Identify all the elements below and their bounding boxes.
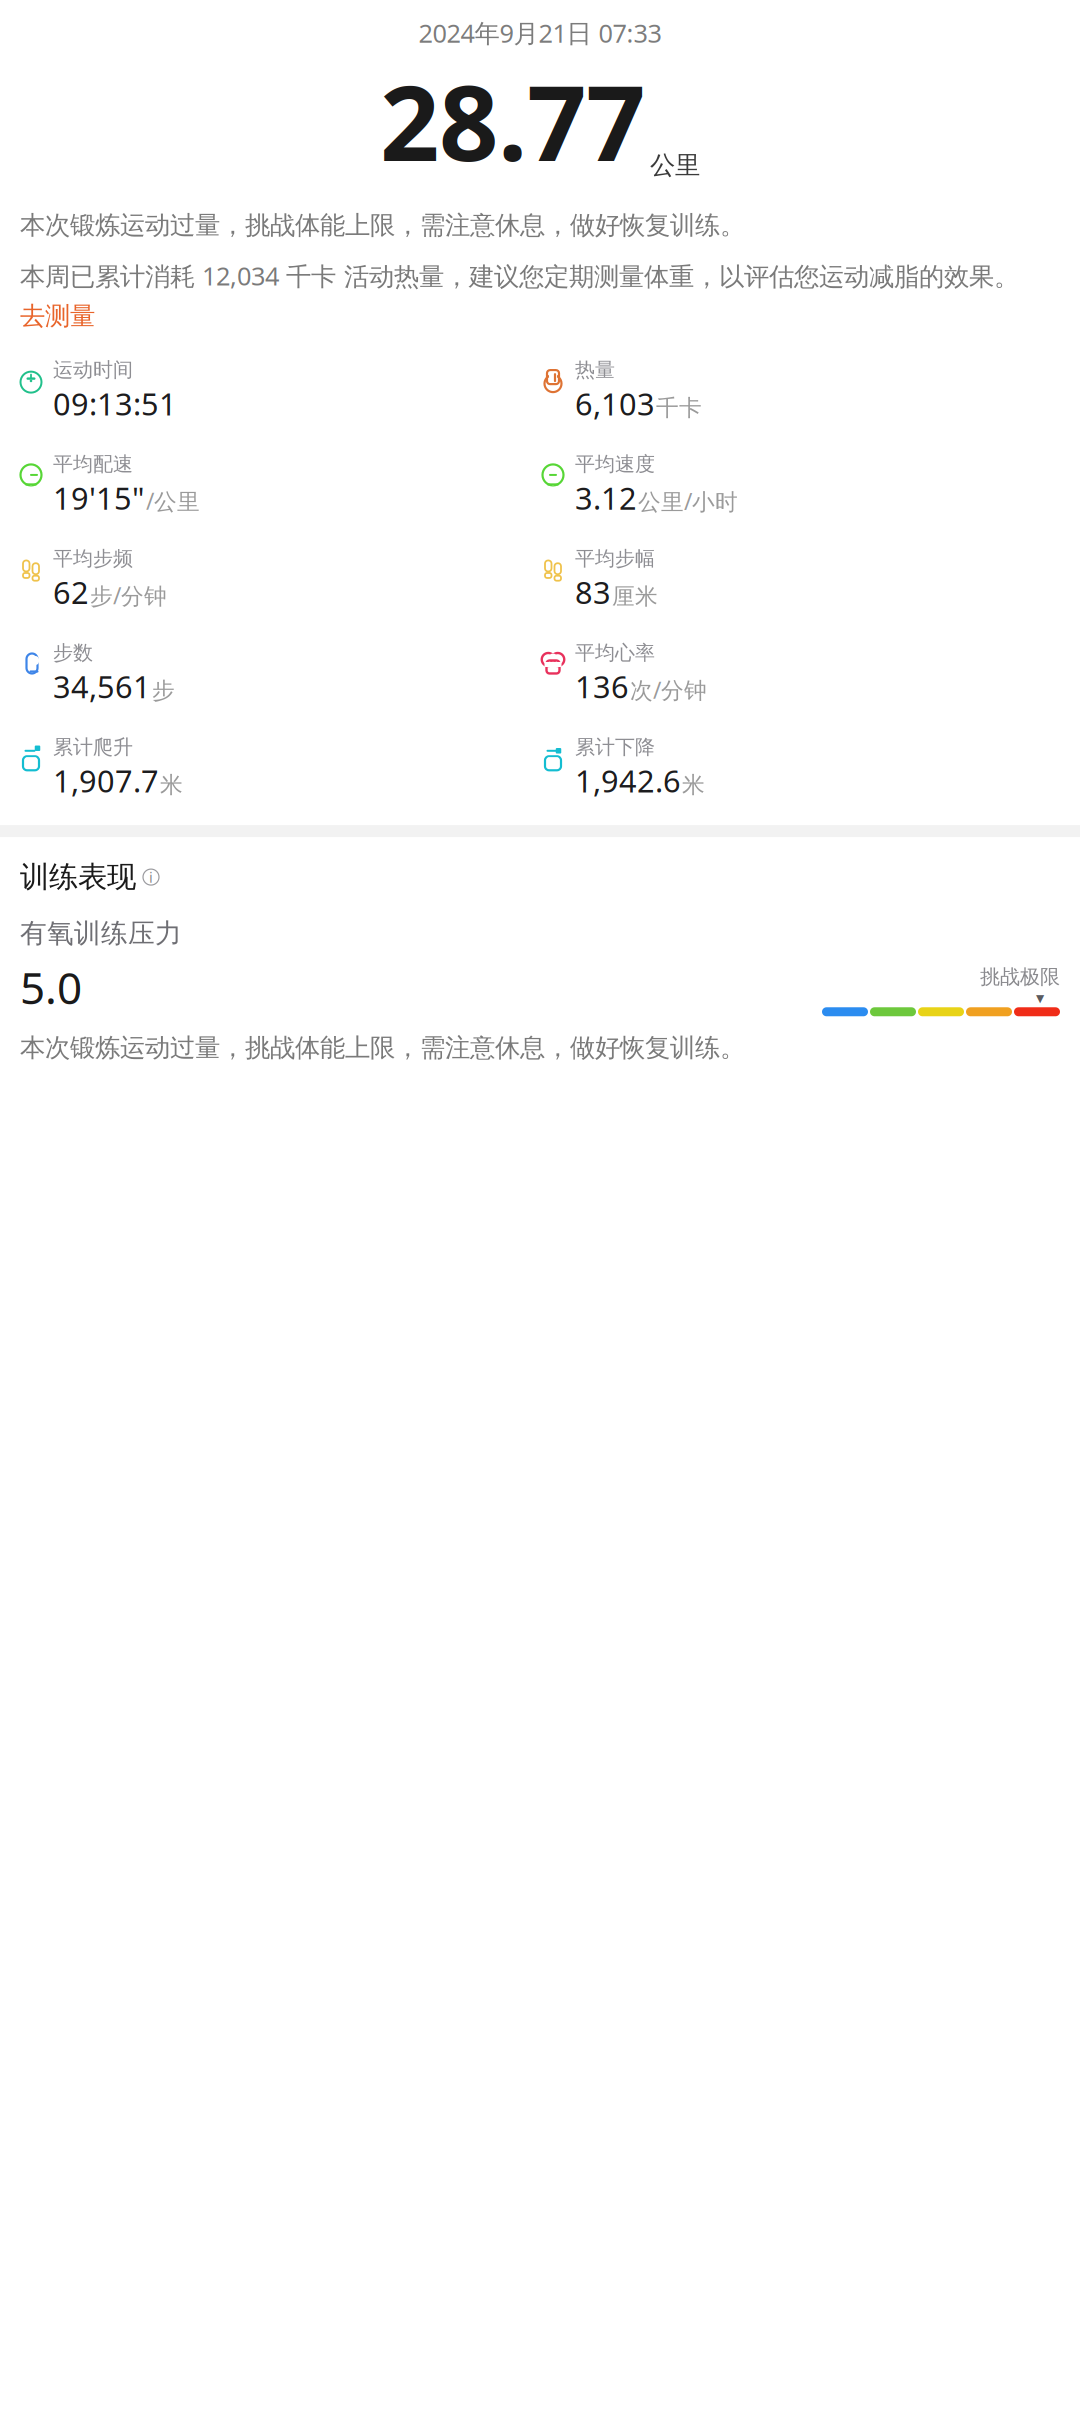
staticText: 千卡 (656, 394, 702, 422)
staticText: 平均速度 (575, 452, 655, 476)
staticText: 厘米 (612, 583, 658, 610)
staticText: 公里 (650, 150, 700, 181)
staticText: 34,561 (53, 666, 151, 707)
button[interactable]: 步数 (18, 640, 540, 707)
staticText: 平均步频 (53, 546, 133, 571)
staticText: 2024年9月21日 07:33 (418, 16, 661, 50)
staticText: 累计爬升 (53, 735, 133, 759)
button[interactable]: 平均步频 (18, 546, 540, 612)
staticText: 6,103 (575, 383, 655, 424)
staticText: 挑战极限 (980, 965, 1060, 989)
staticText: 训练表现 (20, 859, 136, 895)
staticText: 步/分钟 (90, 580, 167, 611)
button[interactable]: 累计下降 (540, 735, 1062, 801)
staticText: 米 (160, 771, 183, 799)
staticText: 1,907.7 (53, 760, 159, 801)
staticText: 平均配速 (53, 452, 133, 476)
button[interactable]: 平均配速 (18, 452, 540, 518)
button[interactable]: 热量 (540, 358, 1062, 424)
button[interactable]: 平均心率 (540, 640, 1062, 707)
staticText: 5.0 (20, 958, 82, 1016)
staticText: 去测量 (20, 300, 95, 332)
staticText: i (149, 867, 153, 887)
staticText: 本次锻炼运动过量，挑战体能上限，需注意休息，做好恢复训练。 (20, 1032, 745, 1063)
button[interactable]: 运动时间 (18, 358, 540, 424)
staticText: 136 (575, 666, 629, 707)
staticText: 83 (575, 572, 611, 612)
staticText: 米 (682, 771, 705, 799)
staticText: 19'15" (53, 477, 145, 518)
staticText: 本周已累计消耗 12,034 千卡 活动热量，建议您定期测量体重，以评估您运动减… (20, 259, 1019, 292)
staticText: 累计下降 (575, 735, 655, 759)
staticText: 62 (53, 572, 89, 612)
staticText: 步 (152, 677, 175, 705)
staticText: 平均心率 (575, 640, 655, 665)
staticText: 热量 (575, 358, 615, 382)
staticText: 1,942.6 (575, 760, 681, 801)
staticText: 步数 (53, 640, 93, 665)
button[interactable]: 平均速度 (540, 452, 1062, 518)
button[interactable]: 训练表现 (0, 837, 179, 899)
staticText: 28.77 (380, 52, 645, 190)
staticText: /公里 (146, 486, 200, 516)
staticText: 有氧训练压力 (20, 917, 182, 950)
button[interactable]: 平均步幅 (540, 546, 1062, 612)
staticText: ▼ (1036, 992, 1044, 1004)
staticText: 次/分钟 (630, 675, 707, 705)
staticText: 09:13:51 (53, 383, 177, 424)
staticText: 3.12 (575, 477, 637, 518)
staticText: 本次锻炼运动过量，挑战体能上限，需注意休息，做好恢复训练。 (20, 210, 745, 241)
button[interactable]: 去测量 (0, 292, 115, 336)
staticText: 运动时间 (53, 358, 133, 382)
button[interactable]: 累计爬升 (18, 735, 540, 801)
staticText: 平均步幅 (575, 546, 655, 571)
staticText: 公里/小时 (638, 486, 738, 516)
